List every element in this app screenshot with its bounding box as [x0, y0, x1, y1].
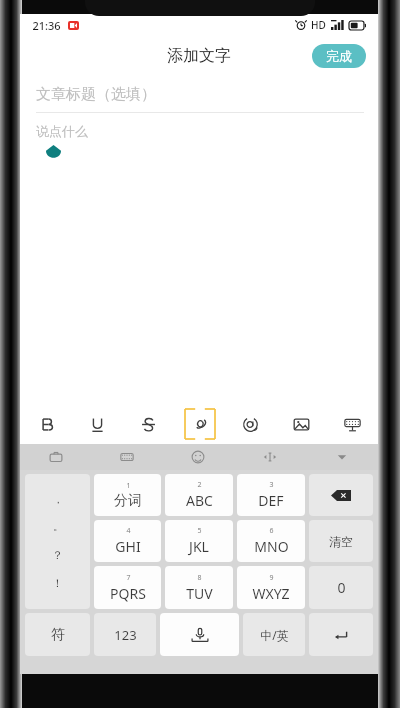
button[interactable]: 123: [94, 613, 156, 656]
button[interactable]: 1: [94, 474, 161, 516]
staticText: 3: [269, 480, 274, 490]
button[interactable]: Bold: [20, 404, 72, 444]
staticText: ，: [53, 493, 63, 506]
staticText: 分词: [114, 492, 142, 510]
button[interactable]: 7: [94, 566, 161, 609]
staticText: 文章标题（选填）: [36, 85, 156, 104]
staticText: 4: [126, 526, 131, 536]
staticText: JKL: [189, 537, 209, 556]
staticText: ？: [52, 548, 63, 562]
button[interactable]: 3: [237, 474, 305, 516]
button[interactable]: Emoji: [162, 444, 234, 470]
button[interactable]: 完成: [312, 44, 366, 68]
button[interactable]: 中/英: [243, 613, 305, 656]
staticText: TUV: [186, 584, 213, 603]
staticText: 7: [126, 573, 131, 583]
staticText: 6: [269, 526, 274, 536]
button[interactable]: 0: [309, 566, 373, 609]
staticText: 完成: [326, 48, 352, 64]
staticText: 中/英: [260, 627, 289, 643]
staticText: WXYZ: [252, 584, 290, 603]
button[interactable]: 文章标题（选填）: [20, 76, 378, 112]
staticText: 清空: [329, 534, 353, 549]
button[interactable]: Underline: [72, 404, 123, 444]
button[interactable]: Enter: [309, 613, 373, 656]
staticText: 123: [114, 626, 137, 644]
button[interactable]: 4: [94, 520, 161, 562]
button[interactable]: Keyboard: [327, 404, 378, 444]
button[interactable]: Move cursor: [234, 444, 306, 470]
staticText: 5: [197, 526, 202, 536]
staticText: HD: [311, 18, 326, 32]
button[interactable]: Attach link: [174, 404, 225, 444]
button[interactable]: Strikethrough: [123, 404, 174, 444]
staticText: GHI: [115, 537, 141, 556]
button[interactable]: 5: [165, 520, 233, 562]
button[interactable]: Mention: [225, 404, 276, 444]
button[interactable]: [160, 613, 239, 656]
button[interactable]: Hide keyboard: [306, 444, 378, 470]
button[interactable]: 9: [237, 566, 305, 609]
staticText: 9: [269, 573, 274, 583]
staticText: 符: [51, 626, 65, 644]
button[interactable]: 8: [165, 566, 233, 609]
staticText: MNO: [254, 537, 289, 556]
button[interactable]: ，: [25, 474, 90, 609]
staticText: DEF: [258, 491, 284, 510]
button[interactable]: 6: [237, 520, 305, 562]
staticText: 8: [197, 573, 202, 583]
staticText: 添加文字: [167, 46, 231, 66]
button[interactable]: 2: [165, 474, 233, 516]
button[interactable]: Clipboard: [20, 444, 91, 470]
button[interactable]: 清空: [309, 520, 373, 562]
staticText: 21:36: [32, 18, 61, 33]
staticText: 0: [337, 578, 346, 597]
staticText: ABC: [186, 491, 213, 510]
staticText: PQRS: [110, 584, 146, 603]
button[interactable]: Keyboard layout: [91, 444, 162, 470]
staticText: 2: [197, 480, 202, 490]
staticText: 。: [53, 520, 63, 533]
staticText: 1: [126, 481, 131, 491]
button[interactable]: 说点什么: [20, 113, 378, 404]
button[interactable]: 符: [25, 613, 90, 656]
button[interactable]: Insert image: [276, 404, 327, 444]
staticText: ！: [52, 576, 63, 590]
staticText: 说点什么: [36, 123, 88, 139]
button[interactable]: Backspace: [309, 474, 373, 516]
